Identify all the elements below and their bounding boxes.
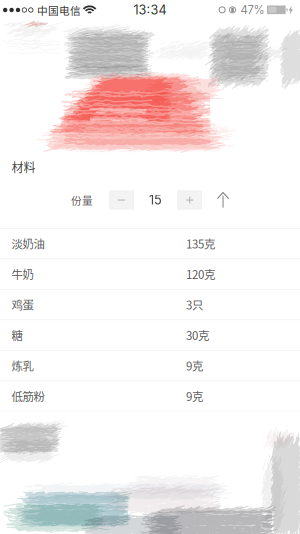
staticText: 135克 xyxy=(186,235,215,252)
staticText: 13:34 xyxy=(133,2,166,18)
staticText: 份量 xyxy=(71,192,93,208)
button[interactable]: Decrease servings xyxy=(109,190,133,210)
button[interactable]: 低筋粉 xyxy=(0,381,300,412)
button[interactable]: 糖 xyxy=(0,320,300,351)
staticText: 糖 xyxy=(11,327,22,343)
staticText: 低筋粉 xyxy=(11,388,44,404)
staticText: 牛奶 xyxy=(11,266,33,282)
button[interactable]: 炼乳 xyxy=(0,351,300,381)
staticText: 炼乳 xyxy=(11,357,33,374)
staticText: 3只 xyxy=(186,296,203,313)
button[interactable]: 淡奶油 xyxy=(0,229,300,259)
button[interactable]: 鸡蛋 xyxy=(0,290,300,320)
staticText: 30克 xyxy=(186,327,209,343)
staticText: 材料 xyxy=(11,158,35,176)
button[interactable]: Unit: 个 xyxy=(213,190,233,210)
button[interactable]: Increase servings xyxy=(177,190,202,210)
staticText: 15 xyxy=(149,192,162,208)
staticText: 9克 xyxy=(186,388,203,404)
staticText: 淡奶油 xyxy=(11,235,44,252)
staticText: 鸡蛋 xyxy=(11,296,33,313)
staticText: 中国电信 xyxy=(37,2,81,18)
staticText: 9克 xyxy=(186,357,203,374)
staticText: 47% xyxy=(240,3,264,17)
button[interactable]: 牛奶 xyxy=(0,259,300,290)
staticText: 120克 xyxy=(186,266,215,282)
